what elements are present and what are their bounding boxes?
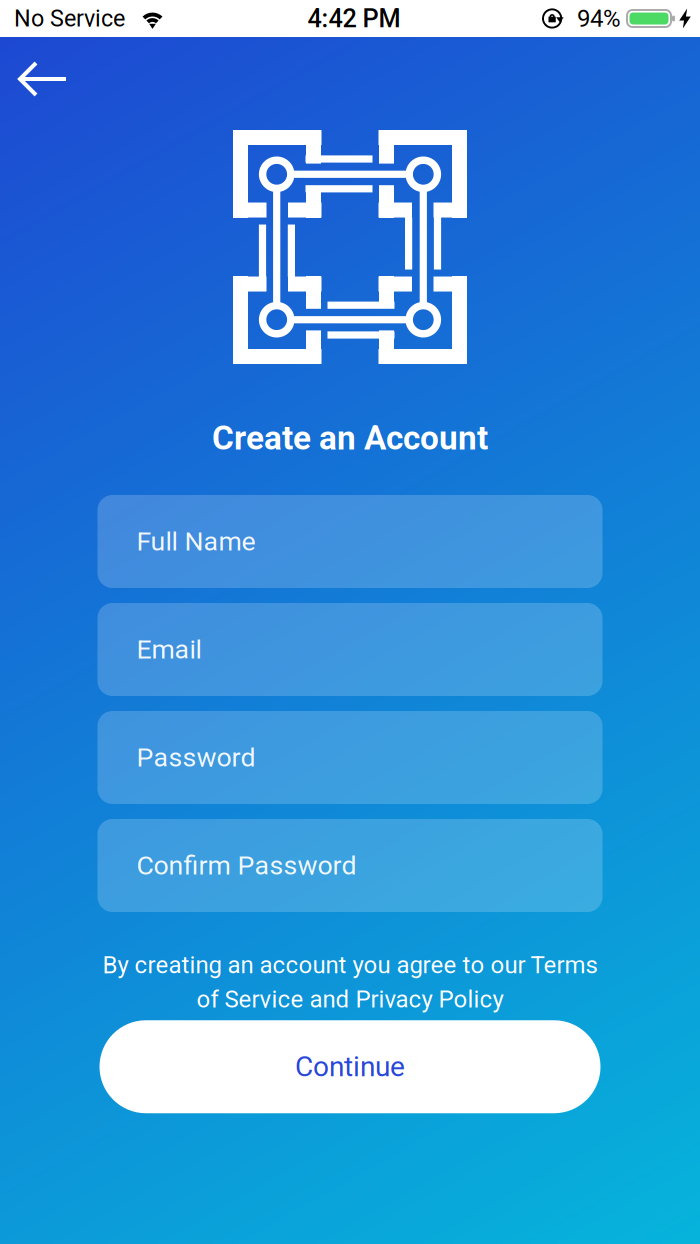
button[interactable]: Confirm Password [97,819,602,912]
staticText: Create an Account [212,418,488,458]
staticText: of Service and Privacy Policy [196,985,503,1013]
button[interactable]: Continue [99,1020,600,1113]
button[interactable]: Full Name [97,495,602,588]
button[interactable]: Back [0,37,80,100]
staticText: No Service [14,5,125,32]
staticText: Password [136,742,255,773]
staticText: 4:42 PM [307,4,400,33]
button[interactable]: Password [97,711,602,804]
staticText: 94% [577,4,621,32]
staticText: By creating an account you agree to our … [102,951,597,979]
button[interactable]: Email [97,603,602,696]
staticText: Full Name [136,526,255,557]
staticText: Confirm Password [136,850,356,881]
staticText: Continue [295,1050,405,1083]
staticText: Email [136,634,201,665]
